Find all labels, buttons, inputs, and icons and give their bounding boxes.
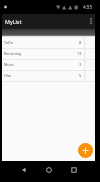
staticText: 12 [77, 51, 82, 56]
staticText: 8 [79, 40, 82, 45]
button[interactable]: ToDo [2, 37, 95, 48]
staticText: Music [4, 62, 15, 67]
staticText: 4:55 [83, 4, 93, 10]
button[interactable]: Back [17, 163, 31, 177]
button[interactable]: Home [42, 163, 56, 177]
button[interactable]: Returning [2, 48, 95, 59]
button[interactable]: More options [87, 14, 95, 28]
button[interactable]: Add new list [78, 143, 93, 158]
staticText: Film [4, 73, 12, 78]
button[interactable]: Film [2, 70, 95, 81]
staticText: Returning [4, 51, 22, 56]
button[interactable]: Recent apps [67, 163, 81, 177]
staticText: MyList [5, 18, 22, 25]
staticText: 5 [79, 73, 82, 78]
staticText: ToDo [4, 40, 13, 45]
staticText: 3 [79, 62, 82, 67]
button[interactable]: Music [2, 59, 95, 70]
